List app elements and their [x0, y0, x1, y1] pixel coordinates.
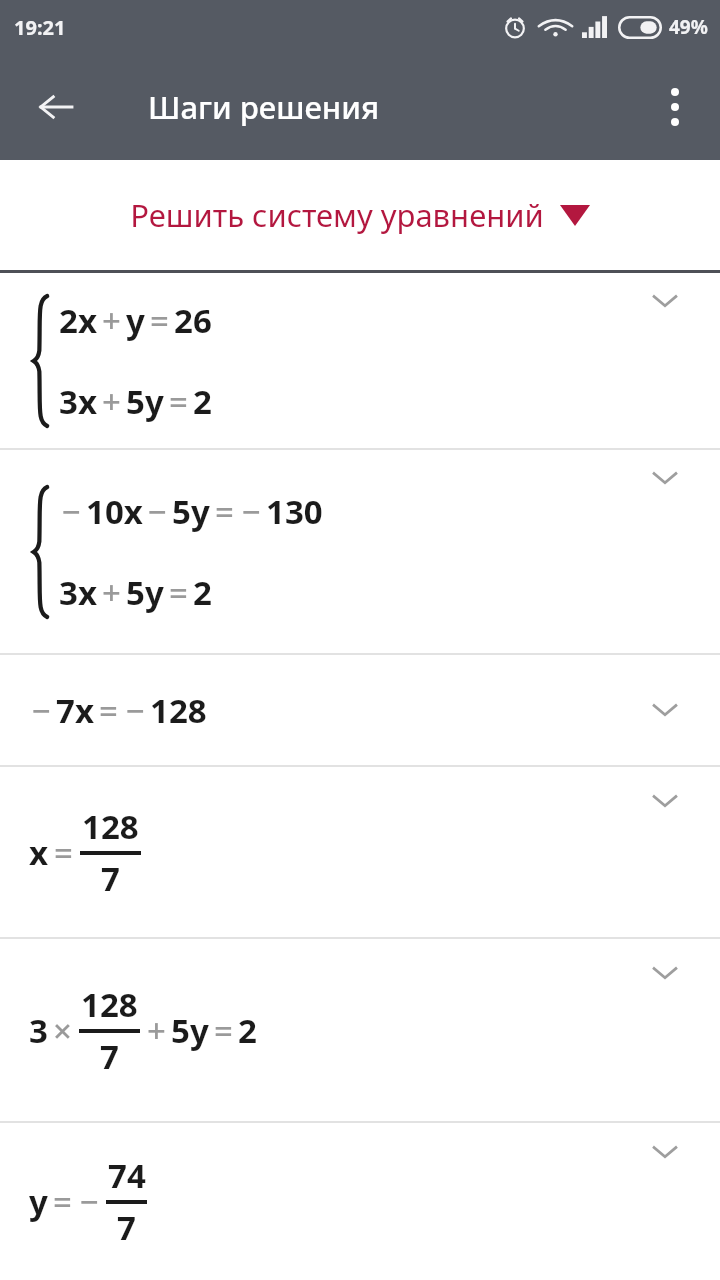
staticText: 2	[193, 379, 212, 424]
staticText: =	[54, 830, 73, 875]
staticText: Решить систему уравнений	[130, 194, 544, 236]
staticText: =	[214, 1008, 233, 1053]
staticText: 19:21	[14, 14, 66, 41]
staticText: 2	[238, 1008, 257, 1053]
button[interactable]: −	[0, 655, 720, 765]
staticText: 5y	[171, 1008, 209, 1053]
staticText: Шаги решения	[148, 86, 380, 128]
button[interactable]: 3	[0, 939, 720, 1121]
staticText: y	[126, 298, 145, 343]
staticText: y	[29, 1179, 48, 1224]
staticText: 128	[82, 804, 139, 849]
staticText: 5y	[172, 489, 210, 534]
staticText: +	[102, 298, 121, 343]
staticText: =	[99, 688, 118, 733]
staticText: 7	[117, 1205, 136, 1250]
staticText: −	[242, 489, 261, 534]
staticText: +	[102, 570, 121, 615]
staticText: 10x	[86, 489, 143, 534]
staticText: 49%	[669, 14, 708, 40]
button[interactable]: Решить систему уравнений	[120, 186, 600, 244]
staticText: 130	[266, 489, 323, 534]
button[interactable]: Back	[20, 71, 92, 143]
button[interactable]: 2x	[0, 273, 720, 448]
staticText: 7	[100, 1034, 119, 1079]
staticText: =	[169, 379, 188, 424]
staticText: 3	[29, 1008, 48, 1053]
staticText: =	[53, 1179, 72, 1224]
staticText: =	[150, 298, 169, 343]
staticText: 2x	[59, 298, 97, 343]
staticText: +	[147, 1008, 166, 1053]
staticText: 2	[193, 570, 212, 615]
staticText: 26	[174, 298, 212, 343]
staticText: 128	[150, 688, 207, 733]
staticText: −	[126, 688, 145, 733]
button[interactable]: x	[0, 767, 720, 937]
staticText: −	[148, 489, 167, 534]
staticText: =	[169, 570, 188, 615]
staticText: 3x	[59, 379, 97, 424]
staticText: −	[62, 489, 81, 534]
staticText: −	[80, 1179, 99, 1224]
button[interactable]: More options	[642, 74, 708, 140]
staticText: 5y	[126, 379, 164, 424]
staticText: 7x	[56, 688, 94, 733]
staticText: 74	[108, 1153, 146, 1198]
staticText: 7	[101, 856, 120, 901]
staticText: +	[102, 379, 121, 424]
staticText: 3x	[59, 570, 97, 615]
staticText: 128	[81, 982, 138, 1027]
staticText: 5y	[126, 570, 164, 615]
button[interactable]: y	[0, 1123, 720, 1280]
staticText: ×	[53, 1008, 72, 1053]
staticText: =	[215, 489, 234, 534]
staticText: x	[29, 830, 49, 875]
staticText: −	[32, 688, 51, 733]
button[interactable]: −	[0, 450, 720, 653]
